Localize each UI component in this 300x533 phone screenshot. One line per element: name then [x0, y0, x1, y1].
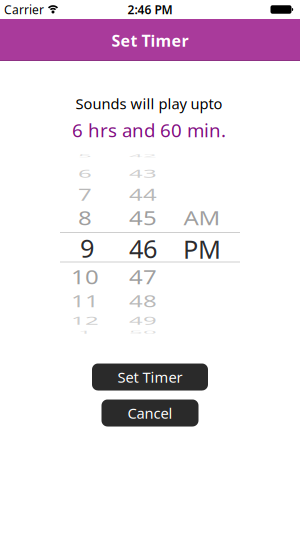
staticText: AM	[183, 202, 220, 233]
staticText: 43	[129, 158, 157, 189]
staticText: 46	[129, 232, 157, 265]
staticText: Set Timer	[117, 367, 182, 387]
staticText: 6	[78, 158, 92, 189]
staticText: 1	[78, 317, 92, 348]
staticText: 11	[71, 285, 99, 317]
staticText: 6 hrs and 60 min.	[72, 118, 226, 142]
staticText: 10	[71, 261, 99, 292]
staticText: 8	[78, 202, 92, 233]
staticText: 7	[78, 179, 92, 210]
staticText: 2:46 PM	[127, 1, 172, 17]
staticText: PM	[183, 232, 221, 266]
staticText: 50	[129, 317, 157, 348]
staticText: 47	[129, 261, 157, 292]
staticText: 12	[71, 305, 99, 336]
staticText: Sounds will play upto	[75, 94, 222, 113]
staticText: 44	[129, 179, 157, 210]
button[interactable]: Set Timer	[92, 363, 208, 390]
staticText: 42	[129, 140, 157, 172]
staticText: Set Timer	[111, 30, 188, 51]
button[interactable]: Cancel	[101, 399, 198, 426]
staticText: Cancel	[127, 403, 172, 423]
staticText: 5	[78, 140, 92, 172]
staticText: 49	[129, 305, 157, 336]
staticText: 45	[129, 202, 157, 233]
staticText: 9	[80, 231, 94, 265]
staticText: 48	[129, 285, 157, 317]
staticText: Carrier	[4, 1, 44, 17]
